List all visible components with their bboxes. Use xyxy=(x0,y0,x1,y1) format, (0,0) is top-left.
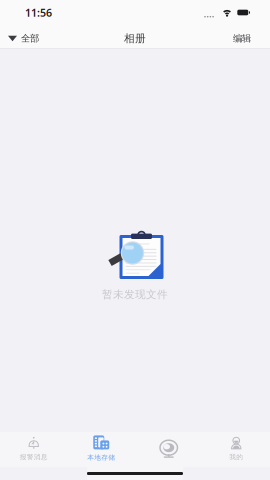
staticText: 11:56 xyxy=(25,5,52,20)
button[interactable]: 报警消息 xyxy=(0,432,67,467)
staticText: 我的 xyxy=(229,453,243,461)
staticText: 编辑 xyxy=(233,33,251,44)
staticText: 本地存储 xyxy=(87,453,115,462)
button[interactable]: 全部 xyxy=(0,27,47,49)
staticText: 全部 xyxy=(21,33,39,44)
staticText: 相册 xyxy=(124,32,146,45)
button[interactable]: 我的 xyxy=(202,432,270,467)
button[interactable]: 本地存储 xyxy=(67,432,135,467)
button[interactable]: 编辑 xyxy=(225,27,270,49)
staticText: 暂未发现文件 xyxy=(102,288,168,301)
staticText: 报警消息 xyxy=(20,453,48,461)
button[interactable]: 摄像头 xyxy=(135,432,202,467)
